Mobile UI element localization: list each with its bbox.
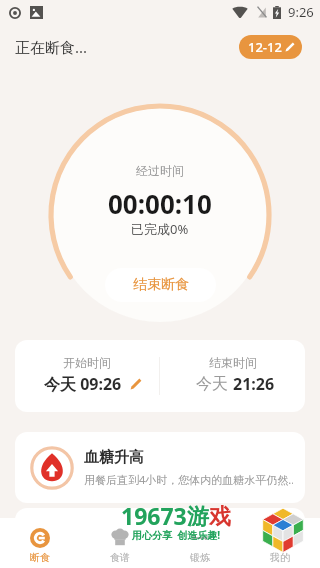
staticText: 已完成0% [131, 220, 189, 238]
staticText: 断食 [30, 551, 50, 564]
staticText: 结束断食 [133, 276, 189, 294]
staticText: 21:26 [233, 373, 275, 395]
button[interactable]: 锻炼 [160, 518, 240, 568]
button[interactable]: 结束断食 [105, 268, 216, 302]
staticText: 12-12 [248, 38, 282, 56]
staticText: 00:00:10 [108, 186, 212, 221]
staticText: 游 [187, 503, 209, 531]
button[interactable]: 开始时间 [15, 340, 159, 412]
button[interactable]: 断食 [0, 518, 80, 568]
staticText: 锻炼 [190, 551, 210, 564]
staticText: 经过时间 [136, 163, 184, 178]
staticText: 19673 [121, 500, 187, 531]
staticText: 用心分享 创造乐趣! [132, 528, 221, 542]
button[interactable]: 血糖升高 [15, 432, 305, 503]
staticText: 用餐后直到4小时，您体内的血糖水平仍然... [84, 472, 293, 487]
staticText: 今天 09:26 [44, 373, 122, 395]
staticText: 结束时间 [209, 355, 257, 370]
button[interactable]: 结束时间 [160, 340, 305, 412]
staticText: 血糖升高 [84, 448, 144, 467]
button[interactable]: 我的 [240, 518, 320, 568]
staticText: 今天 [196, 374, 228, 394]
button[interactable]: 12-12 [239, 35, 302, 59]
button[interactable]: 食谱 [80, 518, 160, 568]
staticText: 开始时间 [63, 355, 111, 370]
staticText: 正在断食... [15, 37, 88, 57]
staticText: 我的 [270, 551, 290, 564]
staticText: 食谱 [110, 551, 130, 564]
staticText: 戏 [209, 503, 231, 531]
staticText: 9:26 [288, 3, 314, 21]
